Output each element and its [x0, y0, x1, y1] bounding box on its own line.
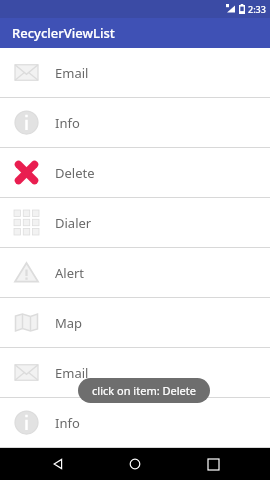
button[interactable]: Dialer — [0, 198, 270, 248]
button[interactable]: Home — [115, 448, 155, 480]
staticText: Info — [55, 114, 80, 132]
button[interactable]: Info — [0, 98, 270, 148]
button[interactable]: Email — [0, 348, 270, 398]
button[interactable]: Email — [0, 48, 270, 98]
button[interactable]: Back — [38, 448, 78, 480]
button[interactable]: Delete — [0, 148, 270, 198]
button[interactable]: Map — [0, 298, 270, 348]
staticText: Alert — [55, 264, 85, 282]
button[interactable]: Info — [0, 398, 270, 448]
staticText: Delete — [55, 164, 95, 182]
staticText: Email — [55, 364, 89, 382]
staticText: 2:33 — [248, 3, 266, 15]
staticText: Email — [55, 64, 89, 82]
staticText: click on item: Delete — [92, 383, 196, 398]
staticText: Info — [55, 414, 80, 432]
button[interactable]: Alert — [0, 248, 270, 298]
staticText: Map — [55, 314, 83, 332]
staticText: Dialer — [55, 214, 92, 232]
staticText: RecyclerViewList — [12, 24, 115, 42]
button[interactable]: Recent apps — [193, 448, 233, 480]
